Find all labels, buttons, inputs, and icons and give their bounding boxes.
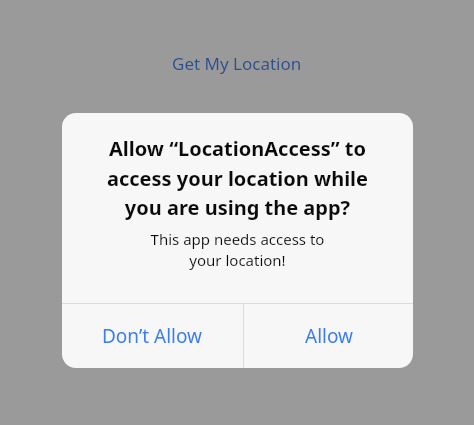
staticText: Don’t Allow — [102, 323, 203, 349]
button[interactable]: Allow — [244, 304, 413, 368]
button[interactable]: Don’t Allow — [62, 304, 243, 368]
staticText: Allow — [305, 323, 353, 349]
staticText: Allow “LocationAccess” to access your lo… — [68, 135, 407, 221]
staticText: This app needs access to your location! — [72, 229, 403, 271]
staticText: Get My Location — [172, 52, 302, 75]
button[interactable]: Get My Location — [0, 52, 474, 75]
